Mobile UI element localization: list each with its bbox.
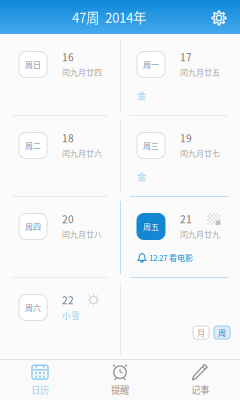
staticText: 2014年 — [105, 7, 146, 27]
button[interactable]: 周一 — [120, 34, 240, 115]
staticText: 周三 — [143, 140, 159, 151]
staticText: 16 — [62, 49, 74, 64]
button[interactable]: 周二 — [0, 115, 120, 196]
button[interactable]: 周五 — [120, 196, 240, 277]
staticText: 周一 — [143, 59, 159, 70]
button[interactable]: 周三 — [120, 115, 240, 196]
staticText: 周 — [218, 327, 226, 338]
staticText: 小雪 — [62, 309, 80, 322]
button[interactable]: 周六 — [0, 277, 120, 358]
staticText: 12:27 看电影 — [149, 252, 193, 263]
staticText: 闰九月廿四 — [62, 66, 102, 78]
staticText: 周日 — [25, 59, 41, 70]
staticText: 20 — [62, 211, 74, 226]
staticText: 闰九月廿七 — [180, 147, 220, 159]
staticText: 月 — [197, 327, 205, 338]
staticText: 闰九月廿九 — [180, 228, 220, 240]
staticText: 周四 — [25, 221, 41, 232]
staticText: 周五 — [143, 221, 159, 232]
staticText: 21 — [180, 211, 192, 226]
staticText: 19 — [180, 130, 192, 145]
button[interactable]: 日历 — [0, 360, 80, 400]
staticText: 提醒 — [111, 383, 129, 396]
button[interactable]: 月 — [193, 326, 209, 339]
staticText: 17 — [180, 49, 192, 64]
button[interactable]: 周日 — [0, 34, 120, 115]
staticText: 金 — [137, 170, 146, 183]
staticText: 闰九月廿五 — [180, 66, 220, 78]
staticText: 闰九月廿八 — [62, 228, 102, 240]
staticText: 周六 — [25, 302, 41, 313]
button[interactable]: 记事 — [160, 360, 240, 400]
staticText: 闰九月廿六 — [62, 147, 102, 159]
staticText: 18 — [62, 130, 74, 145]
staticText: 周二 — [25, 140, 41, 151]
staticText: 47周 — [72, 7, 99, 27]
staticText: 日历 — [31, 383, 49, 396]
staticText: 金 — [137, 89, 146, 102]
button[interactable]: 周 — [214, 326, 230, 339]
staticText: 22 — [62, 292, 74, 307]
button[interactable]: 周四 — [0, 196, 120, 277]
staticText: 记事 — [191, 383, 209, 396]
button[interactable]: 提醒 — [80, 360, 160, 400]
button[interactable]: 设置 — [204, 3, 234, 33]
